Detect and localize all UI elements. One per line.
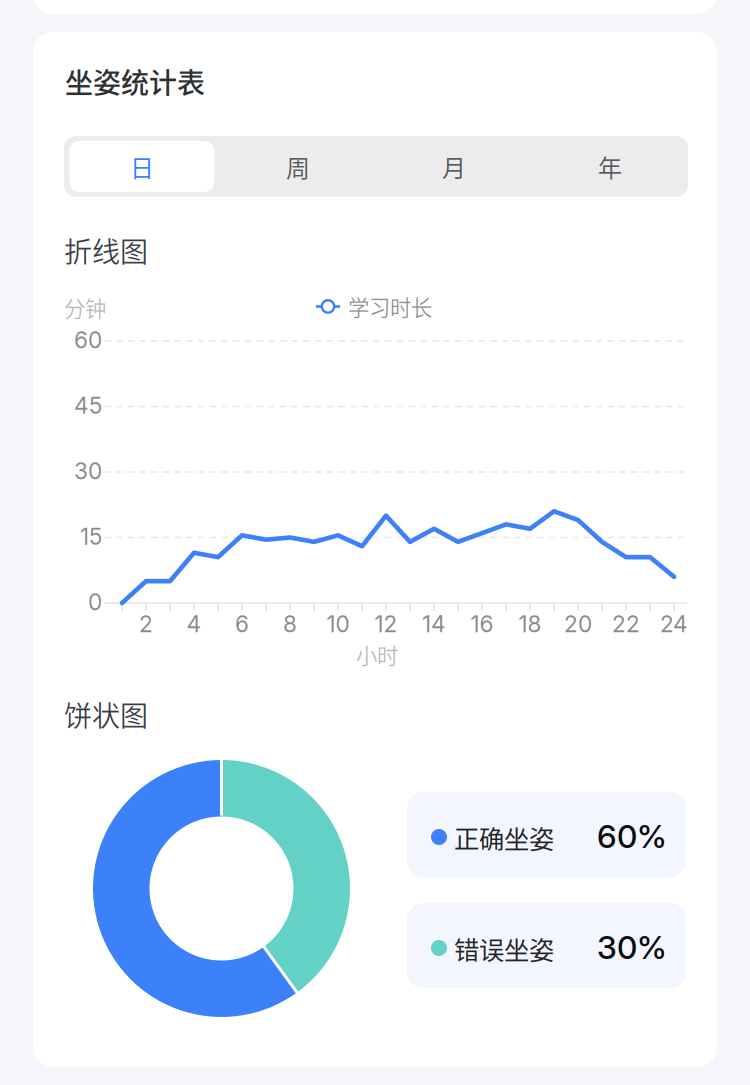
staticText: 60 xyxy=(74,326,102,354)
staticText: 0 xyxy=(88,588,102,616)
staticText: 2 xyxy=(139,610,153,638)
staticText: 6 xyxy=(235,610,249,638)
staticText: 22 xyxy=(612,610,640,638)
staticText: 错误坐姿 xyxy=(454,930,554,967)
staticText: 15 xyxy=(80,523,102,550)
staticText: 日 xyxy=(130,149,154,184)
staticText: 24 xyxy=(660,610,688,638)
staticText: 45 xyxy=(74,392,102,419)
staticText: 18 xyxy=(518,610,541,638)
button[interactable]: 日 xyxy=(64,136,220,197)
staticText: 4 xyxy=(186,610,201,638)
staticText: 60% xyxy=(597,817,667,856)
staticText: 周 xyxy=(286,149,310,184)
button[interactable]: 正确坐姿 xyxy=(407,792,686,877)
button[interactable]: 周 xyxy=(220,136,376,197)
staticText: 学习时长 xyxy=(348,291,432,322)
staticText: 20 xyxy=(564,610,592,638)
staticText: 8 xyxy=(283,610,297,638)
button[interactable]: 月 xyxy=(376,136,532,197)
staticText: 10 xyxy=(326,610,349,638)
staticText: 30 xyxy=(74,457,102,485)
staticText: 年 xyxy=(598,149,622,184)
staticText: 饼状图 xyxy=(64,694,148,734)
button[interactable]: 年 xyxy=(532,136,688,197)
staticText: 小时 xyxy=(356,639,398,670)
staticText: 30% xyxy=(597,928,667,967)
button[interactable]: 错误坐姿 xyxy=(407,903,686,988)
staticText: 16 xyxy=(470,610,493,638)
staticText: 分钟 xyxy=(64,292,106,323)
staticText: 坐姿统计表 xyxy=(65,61,205,101)
staticText: 正确坐姿 xyxy=(454,819,554,856)
staticText: 折线图 xyxy=(64,230,148,270)
staticText: 12 xyxy=(374,610,397,638)
staticText: 14 xyxy=(422,610,446,638)
staticText: 月 xyxy=(442,149,466,184)
